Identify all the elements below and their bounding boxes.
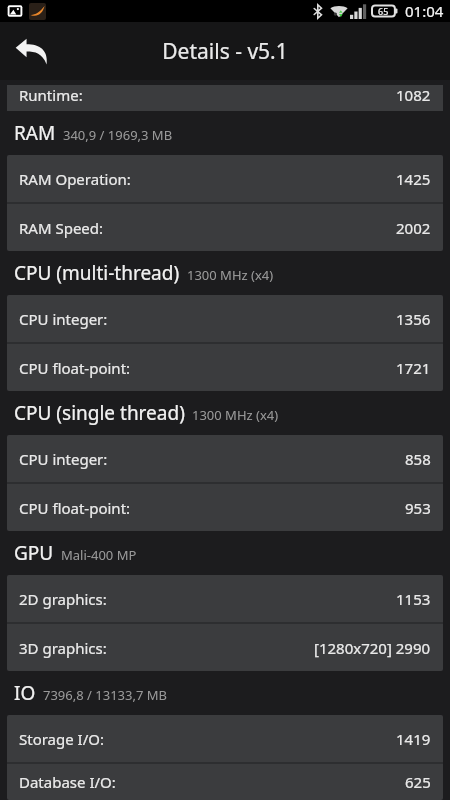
- staticText: [1280x720] 2990: [314, 638, 431, 658]
- staticText: 1419: [396, 729, 431, 749]
- button[interactable]: CPU integer:: [7, 295, 443, 342]
- staticText: Database I/O:: [19, 772, 116, 792]
- staticText: RAM: [14, 120, 56, 146]
- button[interactable]: CPU float-point:: [7, 484, 443, 531]
- button[interactable]: 2D graphics:: [7, 575, 443, 622]
- staticText: Storage I/O:: [19, 729, 105, 749]
- staticText: 1721: [396, 358, 431, 378]
- staticText: CPU (single thread): [14, 400, 185, 426]
- button[interactable]: Runtime:: [7, 85, 443, 111]
- button[interactable]: RAM Speed:: [7, 204, 443, 251]
- staticText: 340,9 / 1969,3 MB: [63, 126, 173, 144]
- staticText: 7396,8 / 13133,7 MB: [43, 686, 167, 704]
- staticText: 1153: [396, 589, 431, 609]
- button[interactable]: RAM Operation:: [7, 155, 443, 202]
- staticText: Mali-400 MP: [61, 546, 137, 564]
- staticText: 1425: [396, 169, 431, 189]
- button[interactable]: Database I/O:: [7, 764, 443, 800]
- staticText: 1082: [396, 85, 431, 105]
- staticText: 01:04: [405, 1, 444, 21]
- button[interactable]: CPU integer:: [7, 435, 443, 482]
- staticText: RAM Speed:: [19, 218, 104, 238]
- staticText: CPU float-point:: [19, 358, 131, 378]
- staticText: IO: [14, 680, 36, 706]
- staticText: CPU integer:: [19, 449, 108, 469]
- staticText: 858: [405, 449, 431, 469]
- staticText: Details - v5.1: [162, 37, 288, 66]
- staticText: Runtime:: [19, 85, 83, 105]
- staticText: 3D graphics:: [19, 638, 107, 658]
- button[interactable]: 3D graphics:: [7, 624, 443, 671]
- staticText: CPU float-point:: [19, 498, 131, 518]
- staticText: GPU: [14, 540, 54, 566]
- staticText: RAM Operation:: [19, 169, 131, 189]
- staticText: 953: [405, 498, 431, 518]
- staticText: CPU integer:: [19, 309, 108, 329]
- button[interactable]: Storage I/O:: [7, 715, 443, 762]
- staticText: 65: [378, 5, 389, 17]
- staticText: 2D graphics:: [19, 589, 107, 609]
- staticText: CPU (multi-thread): [14, 260, 180, 286]
- staticText: 1300 MHz (x4): [192, 406, 279, 424]
- staticText: 2002: [396, 218, 431, 238]
- button[interactable]: CPU float-point:: [7, 344, 443, 391]
- button[interactable]: Back: [4, 23, 60, 79]
- staticText: 625: [405, 772, 431, 792]
- staticText: 1300 MHz (x4): [187, 266, 274, 284]
- staticText: 1356: [396, 309, 431, 329]
